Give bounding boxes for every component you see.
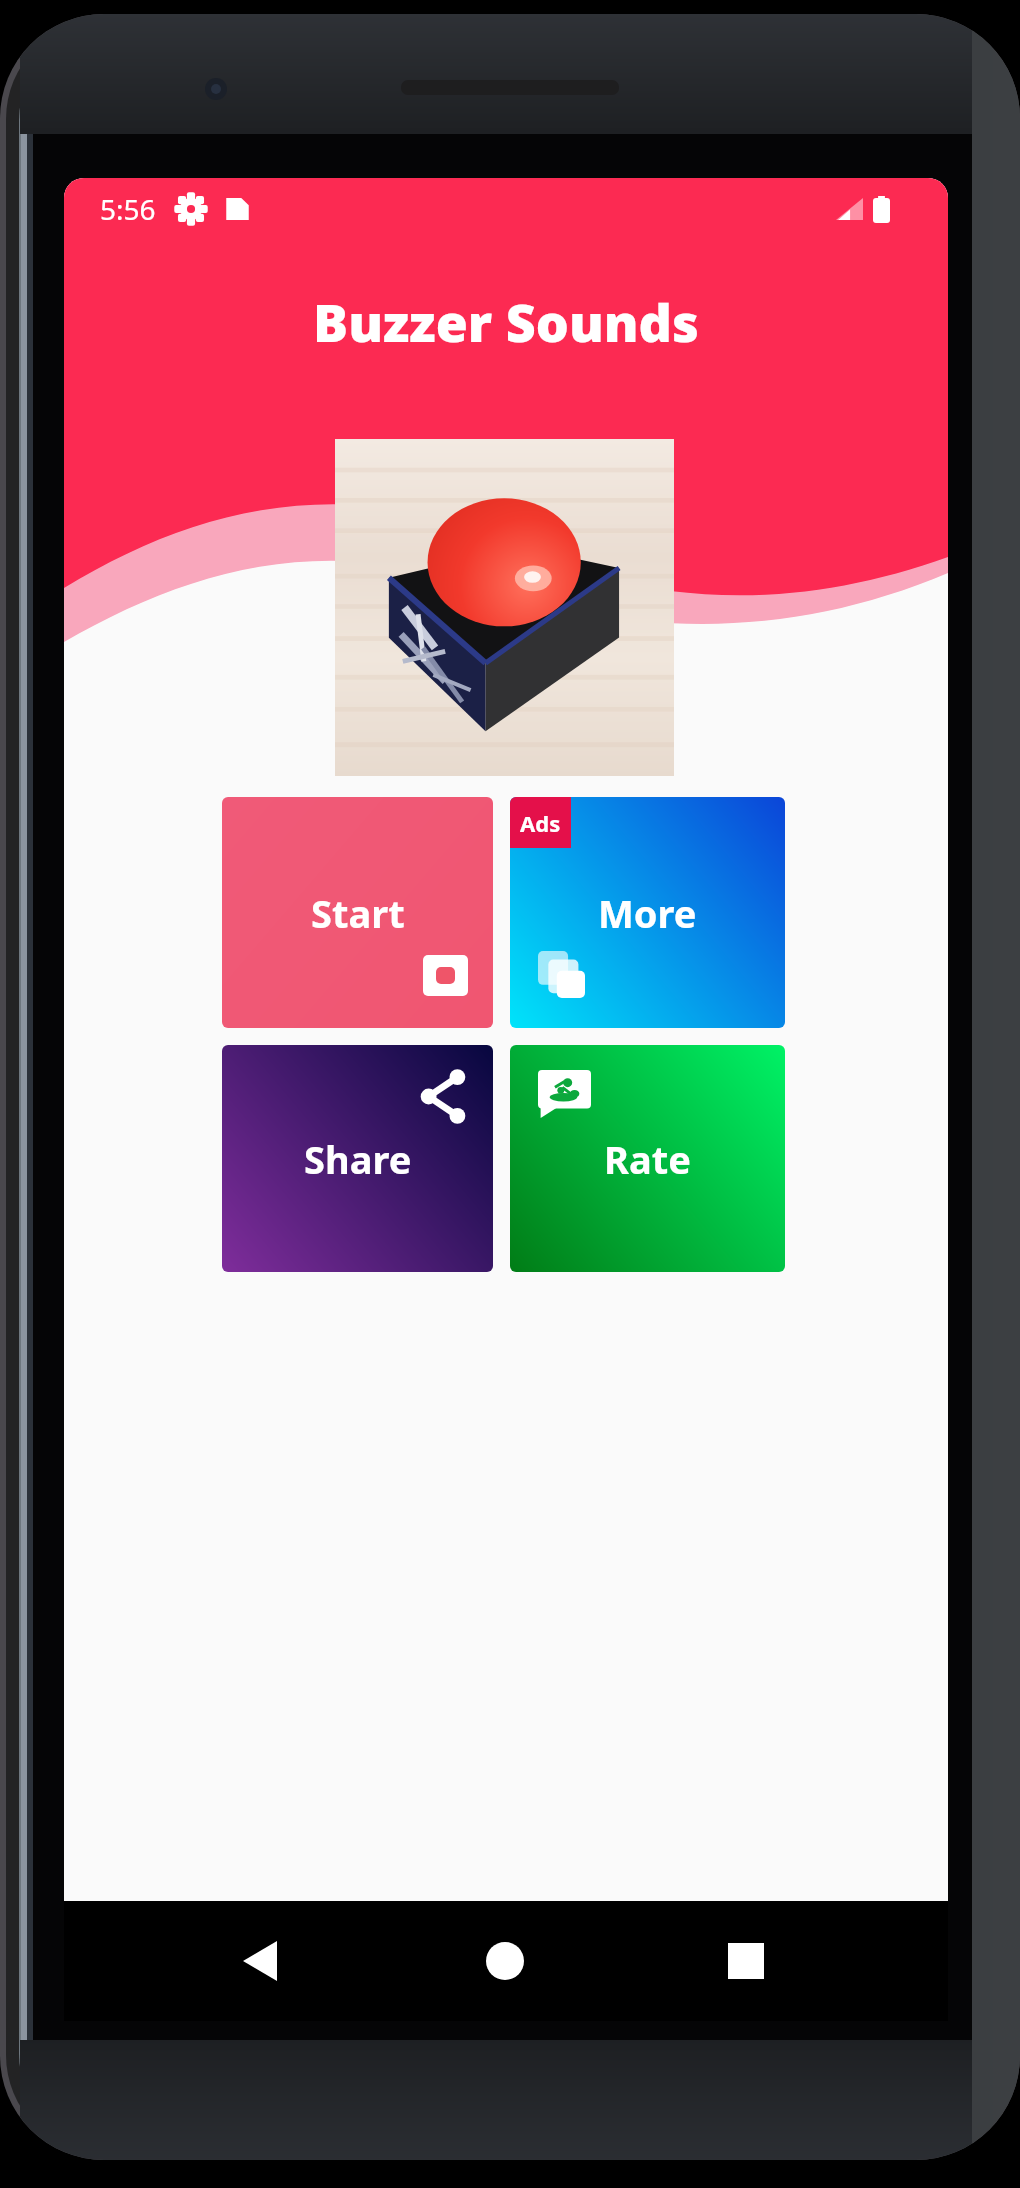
staticText: Share: [304, 1133, 412, 1185]
staticText: Ads: [520, 808, 561, 838]
button[interactable]: Buzzer: [335, 439, 674, 776]
other: Share: [419, 1068, 467, 1125]
button[interactable]: Back: [200, 1901, 320, 2021]
button[interactable]: Home: [445, 1901, 565, 2021]
staticText: Buzzer Sounds: [313, 286, 699, 357]
staticText: More: [598, 887, 697, 939]
staticText: 5:56: [100, 190, 156, 228]
button[interactable]: Start: [222, 797, 493, 1028]
other: More apps: [538, 951, 585, 998]
button[interactable]: Share: [222, 1045, 493, 1272]
button[interactable]: More: [510, 797, 785, 1028]
button[interactable]: Recent apps: [686, 1901, 806, 2021]
staticText: Rate: [604, 1133, 691, 1185]
button[interactable]: Rate: [510, 1045, 785, 1272]
other: Rate: [538, 1070, 591, 1118]
staticText: Start: [311, 887, 405, 939]
